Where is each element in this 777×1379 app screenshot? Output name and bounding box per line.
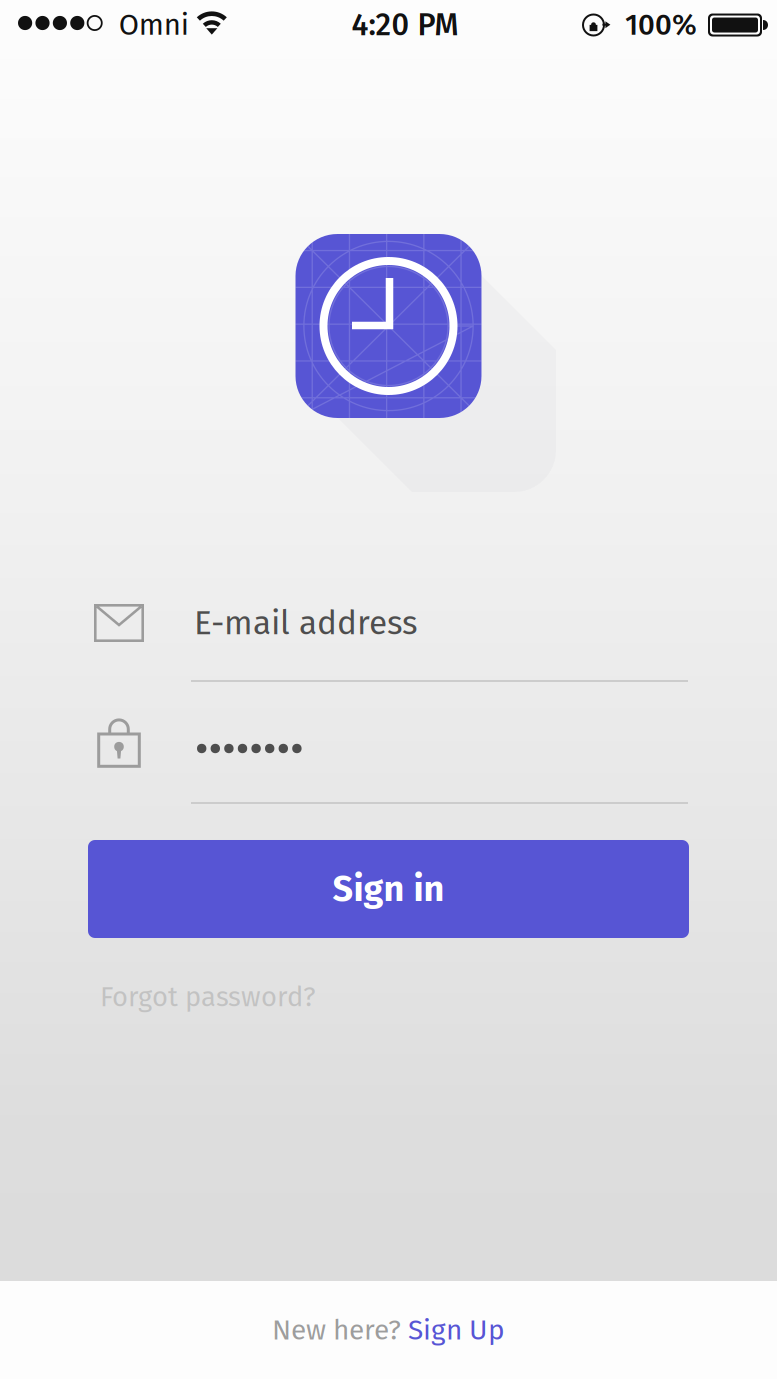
staticText: Sign in bbox=[332, 867, 444, 911]
button[interactable]: Forgot password? bbox=[100, 981, 316, 1013]
staticText: 4:20 PM bbox=[351, 7, 458, 43]
button[interactable]: Sign Up bbox=[408, 1313, 505, 1347]
staticText: E-mail address bbox=[194, 603, 418, 643]
button[interactable]: Sign in bbox=[88, 840, 689, 938]
staticText: 100% bbox=[625, 7, 697, 43]
staticText: Omni bbox=[119, 7, 189, 43]
staticText: Sign Up bbox=[408, 1313, 505, 1347]
staticText: New here? bbox=[272, 1313, 408, 1347]
staticText: Forgot password? bbox=[100, 981, 316, 1013]
